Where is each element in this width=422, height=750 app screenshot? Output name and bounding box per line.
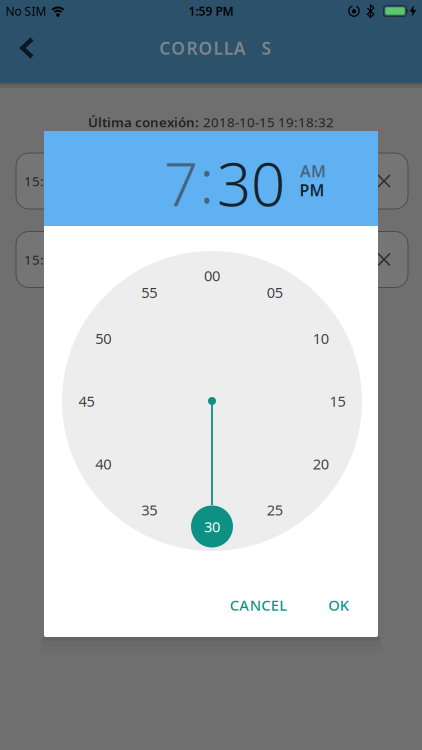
button[interactable]: PM	[299, 179, 324, 201]
button[interactable]: 10	[307, 322, 335, 354]
staticText: 2018-10-15 19:18:32	[203, 113, 334, 131]
staticText: 15:30	[24, 172, 60, 190]
button[interactable]: 15	[323, 385, 351, 417]
staticText: No SIM	[5, 3, 46, 19]
button[interactable]: 20	[307, 448, 335, 479]
button[interactable]: 05	[261, 277, 289, 308]
staticText: 05	[267, 283, 283, 302]
staticText: 50	[95, 328, 111, 348]
staticText: :	[199, 140, 214, 220]
staticText: 7	[164, 143, 198, 223]
staticText: 30	[217, 143, 285, 223]
button[interactable]: Back	[9, 26, 47, 70]
button[interactable]: 40	[89, 448, 117, 479]
staticText: 20	[313, 454, 329, 473]
staticText: 40	[95, 454, 111, 473]
staticText: OK	[328, 595, 349, 615]
staticText: 55	[141, 283, 157, 302]
button[interactable]: 50	[89, 322, 117, 354]
staticText: AM	[300, 160, 326, 182]
staticText: Última conexión:	[88, 113, 199, 131]
staticText: S	[261, 36, 271, 59]
button[interactable]: OK	[320, 587, 357, 623]
button[interactable]: 15:30	[16, 153, 408, 209]
button[interactable]: 35	[135, 494, 163, 525]
staticText: COROLLA	[159, 36, 246, 59]
button[interactable]: 55	[135, 277, 163, 308]
button[interactable]: Clear time	[373, 248, 395, 270]
button[interactable]: 15:30	[16, 231, 408, 287]
button[interactable]: 45	[72, 385, 100, 417]
button[interactable]: CANCEL	[222, 587, 295, 623]
button[interactable]: 25	[261, 494, 289, 525]
staticText: CANCEL	[230, 595, 287, 615]
staticText: 15:30	[24, 251, 60, 268]
button[interactable]: AM	[300, 160, 326, 182]
staticText: 30	[204, 517, 220, 536]
staticText: 25	[267, 500, 283, 519]
staticText: 15	[329, 391, 345, 411]
staticText: 1:59 PM	[188, 3, 233, 19]
staticText: 00	[204, 266, 220, 285]
staticText: 35	[141, 500, 157, 519]
button[interactable]: Clear time	[373, 170, 395, 192]
staticText: 10	[313, 328, 329, 348]
staticText: PM	[299, 179, 324, 201]
staticText: 45	[78, 391, 94, 411]
button[interactable]: 00	[198, 260, 226, 291]
button[interactable]: 30	[198, 511, 226, 542]
